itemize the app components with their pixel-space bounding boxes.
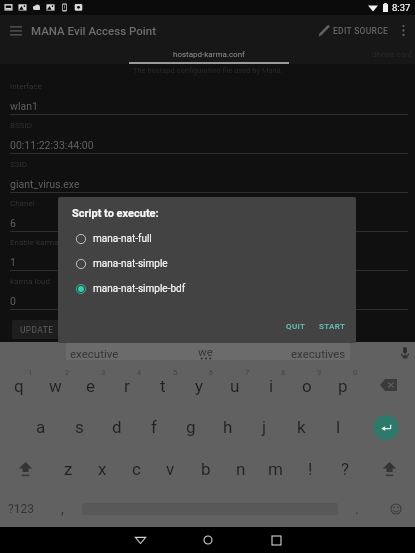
staticText: j [262, 417, 267, 437]
button[interactable]: Voice input [401, 347, 409, 359]
staticText: , [61, 501, 64, 517]
staticText: s [75, 417, 84, 437]
staticText: 00:11:22:33:44:00 [10, 139, 94, 151]
button[interactable]: a [22, 406, 60, 448]
button[interactable]: Back [109, 527, 171, 553]
button[interactable]: 8 [253, 364, 289, 406]
staticText: n [236, 459, 246, 479]
staticText: mana-nat-full [93, 233, 152, 245]
button[interactable]: Recents [245, 527, 307, 553]
staticText: a [36, 417, 46, 437]
staticText: e [86, 376, 96, 396]
button[interactable]: c [119, 448, 153, 490]
staticText: . [355, 501, 359, 517]
staticText: dhcpd.conf [372, 50, 413, 59]
button[interactable]: z [51, 448, 85, 490]
staticText: o [302, 376, 312, 396]
button[interactable]: 6 [181, 364, 217, 406]
button[interactable]: Shift [363, 448, 415, 490]
button[interactable]: START [314, 316, 351, 336]
staticText: d [112, 417, 122, 437]
button[interactable]: 4 [109, 364, 145, 406]
button[interactable]: v [153, 448, 188, 490]
staticText: b [201, 459, 211, 479]
button[interactable]: UPDATE [12, 320, 62, 339]
staticText: 5 [173, 368, 178, 377]
button[interactable]: Emoji [376, 490, 415, 527]
staticText: m [268, 459, 283, 479]
staticText: l [336, 417, 341, 437]
button[interactable]: h [209, 406, 246, 448]
staticText: i [269, 376, 274, 396]
button[interactable]: hostapd-karma.conf [129, 46, 289, 62]
button[interactable]: ? [328, 448, 363, 490]
staticText: wlan1 [10, 100, 38, 112]
button[interactable]: 2 [37, 364, 73, 406]
staticText: giant_virus.exe [10, 178, 80, 190]
button[interactable]: EDIT SOURCE [315, 15, 392, 46]
staticText: p [338, 376, 348, 396]
button[interactable]: QUIT [279, 316, 313, 336]
button[interactable]: x [85, 448, 119, 490]
staticText: UPDATE [20, 325, 54, 335]
button[interactable]: 5 [145, 364, 181, 406]
button[interactable]: mana-nat-simple-bdf [58, 276, 356, 301]
staticText: MANA Evil Access Point [31, 24, 157, 37]
button[interactable]: b [188, 448, 223, 490]
staticText: f [151, 417, 157, 437]
staticText: 6 [10, 217, 16, 229]
staticText: r [124, 376, 130, 396]
button[interactable]: l [320, 406, 357, 448]
staticText: mana-nat-simple-bdf [93, 283, 186, 295]
staticText: q [14, 376, 24, 396]
staticText: z [64, 459, 73, 479]
staticText: The hostapd configuration file used by M… [133, 66, 283, 75]
button[interactable]: Shift [0, 448, 51, 490]
staticText: 8:37 [392, 2, 411, 13]
staticText: Chanel [10, 199, 35, 208]
staticText: EDIT SOURCE [333, 26, 389, 36]
button[interactable]: m [258, 448, 293, 490]
button[interactable]: dhcpd.conf [372, 50, 413, 59]
button[interactable]: k [283, 406, 320, 448]
button[interactable]: g [172, 406, 209, 448]
button[interactable]: s [60, 406, 98, 448]
button[interactable]: j [246, 406, 283, 448]
button[interactable]: Backspace [361, 364, 415, 406]
staticText: Enable karma [10, 238, 59, 247]
button[interactable]: Home [177, 527, 239, 553]
button[interactable]: f [135, 406, 172, 448]
staticText: 9 [317, 368, 322, 377]
staticText: QUIT [286, 322, 306, 331]
staticText: karma loud [10, 277, 50, 286]
button[interactable]: 1 [0, 364, 37, 406]
button[interactable]: we [198, 345, 213, 361]
staticText: SSID [10, 160, 27, 169]
button[interactable]: Space [82, 490, 338, 527]
button[interactable]: executive [66, 347, 123, 360]
staticText: 8 [281, 368, 286, 377]
staticText: v [166, 459, 175, 479]
staticText: 1 [10, 256, 16, 268]
button[interactable]: 0 [325, 364, 361, 406]
button[interactable]: 7 [217, 364, 253, 406]
button[interactable]: 9 [289, 364, 325, 406]
staticText: Interface [10, 82, 42, 91]
button[interactable]: Enter [357, 406, 415, 448]
staticText: 1 [28, 368, 33, 377]
button[interactable]: mana-nat-simple [58, 251, 356, 276]
staticText: executive [70, 347, 119, 360]
button[interactable]: 3 [73, 364, 109, 406]
button[interactable]: n [223, 448, 258, 490]
button[interactable]: executives [287, 347, 350, 360]
button[interactable]: ?123 [0, 490, 42, 527]
button[interactable]: d [98, 406, 135, 448]
staticText: 0 [353, 368, 358, 377]
button[interactable]: More options [392, 15, 414, 46]
button[interactable]: ! [293, 448, 328, 490]
button[interactable]: Menu [0, 15, 31, 46]
button[interactable]: mana-nat-full [58, 226, 356, 251]
staticText: we [198, 345, 213, 358]
